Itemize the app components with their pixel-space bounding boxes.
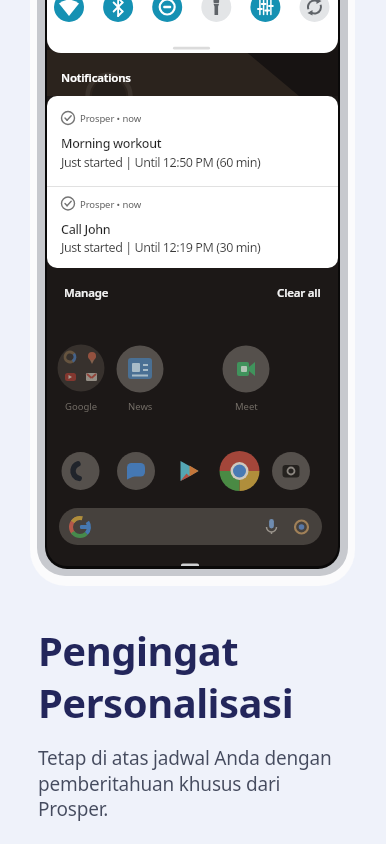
staticText: Prosper • now [80,198,142,211]
button[interactable]: Prosper • now [47,96,338,186]
button[interactable]: Clear all [277,285,321,301]
staticText: Manage [64,285,109,301]
staticText: Meet [235,400,258,413]
staticText: Just started | Until 12:50 PM (60 min) [61,154,261,171]
button[interactable] [47,0,338,53]
staticText: Notifications [61,70,131,86]
button[interactable]: Manage [64,285,109,301]
button[interactable]: Prosper • now [47,187,338,268]
staticText: Google [65,400,98,413]
staticText: Clear all [277,285,321,301]
staticText: Morning workout [61,135,162,152]
staticText: News [128,400,153,413]
staticText: Tetap di atas jadwal Anda dengan pemberi… [38,745,332,822]
staticText: Call John [61,221,111,238]
staticText: Prosper • now [80,112,142,125]
staticText: Just started | Until 12:19 PM (30 min) [61,239,261,256]
staticText: Pengingat Personalisasi [38,623,294,730]
